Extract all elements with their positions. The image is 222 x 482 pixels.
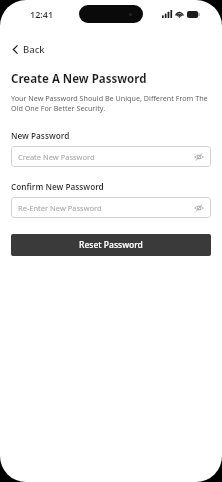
button[interactable]: Back <box>9 41 47 58</box>
button[interactable]: Re-Enter New Password <box>11 197 211 218</box>
staticText: Create A New Password <box>11 71 147 87</box>
staticText: Re-Enter New Password <box>18 203 192 213</box>
button[interactable]: Show password <box>192 150 205 163</box>
staticText: Reset Password <box>79 239 143 251</box>
staticText: Your New Password Should Be Unique, Diff… <box>11 93 210 113</box>
staticText: Back <box>23 43 45 56</box>
button[interactable]: Create New Password <box>11 146 211 167</box>
staticText: New Password <box>11 130 70 141</box>
staticText: Create New Password <box>18 152 192 162</box>
staticText: 12:41 <box>30 8 54 20</box>
button[interactable]: Show password <box>192 201 205 214</box>
staticText: Confirm New Password <box>11 181 104 192</box>
button[interactable]: Reset Password <box>11 234 211 256</box>
